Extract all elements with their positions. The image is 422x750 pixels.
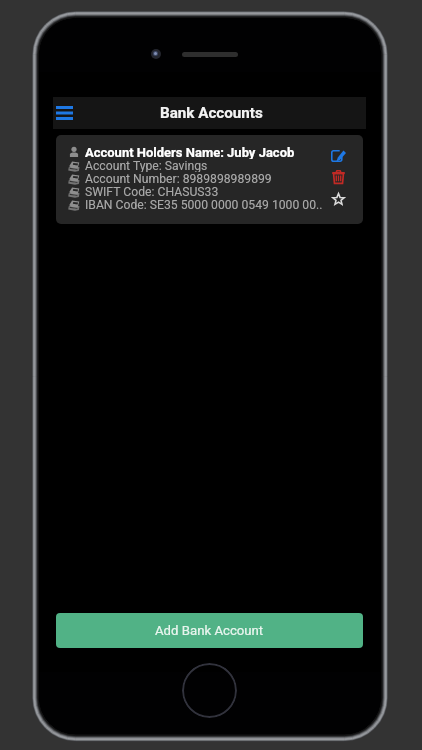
staticText: Account Holders Name: Juby Jacob (85, 145, 295, 159)
staticText: Bank Accounts (160, 104, 263, 122)
button[interactable]: Delete account (327, 168, 349, 186)
button[interactable]: Account Holders Name: Juby Jacob (56, 135, 363, 224)
button[interactable]: Open navigation menu (53, 101, 75, 125)
staticText: Account Type: Savings (85, 159, 208, 172)
staticText: SWIFT Code: CHASUS33 (85, 185, 219, 198)
button[interactable]: Add Bank Account (56, 613, 363, 648)
button[interactable]: Home (182, 663, 237, 718)
button[interactable]: Mark as favourite (327, 189, 349, 207)
button[interactable]: Open navigation menu (53, 97, 366, 129)
button[interactable]: Edit account (327, 147, 349, 165)
staticText: Account Number: 8989898989899 (85, 172, 272, 185)
staticText: IBAN Code: SE35 5000 0000 0549 1000 00..… (85, 198, 323, 211)
staticText: Add Bank Account (155, 623, 264, 638)
